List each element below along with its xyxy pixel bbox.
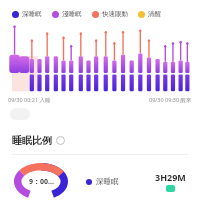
button[interactable]: 清醒	[138, 10, 161, 18]
staticText: 淺睡眠	[62, 10, 82, 18]
staticText: 深睡眠	[96, 177, 119, 186]
staticText: 3H29M	[155, 171, 186, 183]
button[interactable]	[10, 108, 30, 120]
button[interactable]: 深睡眠	[12, 10, 42, 18]
button[interactable]: 淺睡眠	[52, 10, 82, 18]
button[interactable]: 快速眼動	[92, 10, 128, 18]
button[interactable]: 睡眠比例	[12, 134, 188, 147]
staticText: 清醒	[148, 10, 161, 18]
other: About sleep ratio	[56, 136, 65, 145]
staticText: 快速眼動	[102, 10, 128, 18]
staticText: 09/30 09:30 醒來	[149, 96, 192, 104]
button[interactable]: 深睡眠	[86, 177, 119, 186]
staticText: 09/30 00:21 入睡	[8, 96, 51, 104]
staticText: 深睡眠	[22, 10, 42, 18]
staticText: 9：00…	[29, 177, 54, 187]
staticText: 睡眠比例	[12, 134, 52, 147]
